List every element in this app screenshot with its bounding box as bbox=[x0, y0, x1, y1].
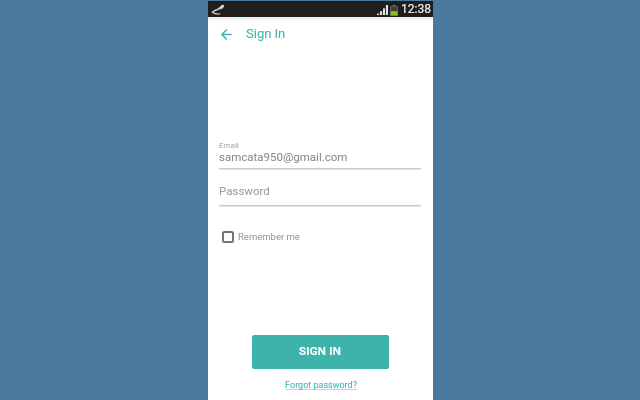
staticText: 12:38 bbox=[401, 2, 431, 16]
staticText: Remember me bbox=[238, 231, 300, 242]
staticText: samcata950@gmail.com bbox=[219, 150, 348, 163]
staticText: Sign In bbox=[246, 26, 286, 41]
button[interactable]: Forgot password? bbox=[208, 380, 433, 391]
staticText: Password bbox=[219, 184, 270, 197]
staticText: Forgot password? bbox=[285, 380, 357, 391]
staticText: Email bbox=[219, 141, 239, 150]
button[interactable]: SIGN IN bbox=[252, 335, 389, 369]
button[interactable]: Remember me bbox=[222, 228, 300, 246]
button[interactable]: Back bbox=[216, 24, 236, 44]
staticText: SIGN IN bbox=[299, 344, 342, 357]
